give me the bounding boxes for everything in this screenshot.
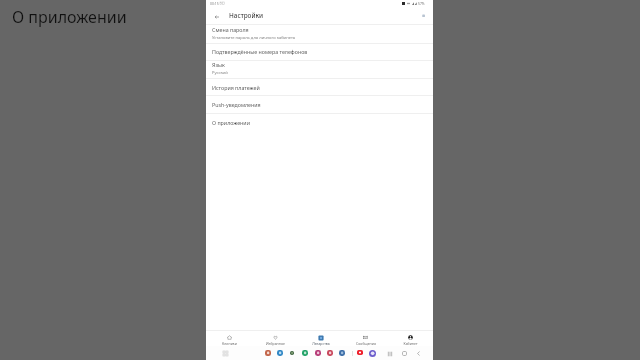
staticText: Русский bbox=[212, 70, 228, 76]
staticText: Установите пароль для личного кабинета bbox=[212, 35, 296, 41]
button[interactable]: App bbox=[369, 350, 376, 357]
staticText: История платежей bbox=[212, 84, 260, 91]
button[interactable]: Home bbox=[402, 351, 407, 356]
button[interactable]: Язык bbox=[206, 60, 433, 77]
button[interactable]: App bbox=[327, 350, 333, 356]
button[interactable]: Options bbox=[419, 11, 428, 20]
button[interactable]: Клиники bbox=[206, 330, 252, 346]
button[interactable]: App bbox=[315, 350, 321, 356]
button[interactable]: App bbox=[277, 350, 283, 356]
staticText: Push-уведомления bbox=[212, 101, 261, 108]
button[interactable]: Back bbox=[416, 351, 421, 356]
button[interactable]: App bbox=[265, 350, 271, 356]
staticText: О приложении bbox=[212, 119, 250, 126]
staticText: Смена пароля bbox=[212, 26, 249, 33]
staticText: Настройки bbox=[229, 11, 264, 20]
button[interactable]: App bbox=[302, 350, 308, 356]
button[interactable]: Лекарства bbox=[298, 330, 343, 346]
button[interactable]: Push-уведомления bbox=[206, 95, 433, 113]
button[interactable]: YouTube bbox=[357, 350, 363, 355]
staticText: 00:15 bbox=[210, 1, 219, 6]
button[interactable]: Recents bbox=[387, 351, 393, 357]
staticText: О приложении bbox=[12, 6, 127, 28]
button[interactable]: App bbox=[339, 350, 345, 356]
staticText: Подтверждённые номера телефонов bbox=[212, 48, 308, 55]
staticText: Лекарства bbox=[312, 341, 330, 346]
button[interactable]: Back bbox=[212, 12, 222, 22]
button[interactable]: История платежей bbox=[206, 78, 433, 96]
button[interactable]: Сообщения bbox=[343, 330, 388, 346]
button[interactable]: О приложении bbox=[206, 113, 433, 131]
staticText: 57% bbox=[418, 1, 425, 5]
button[interactable]: Кабинет bbox=[388, 330, 433, 346]
button[interactable]: Подтверждённые номера телефонов bbox=[206, 43, 433, 60]
staticText: Кабинет bbox=[403, 341, 418, 346]
staticText: Язык bbox=[212, 61, 225, 68]
button[interactable]: Избранное bbox=[252, 330, 298, 346]
button[interactable]: App bbox=[290, 351, 294, 355]
button[interactable]: Смена пароля bbox=[206, 24, 433, 43]
staticText: Избранное bbox=[266, 341, 285, 346]
staticText: Клиники bbox=[222, 341, 237, 346]
staticText: Сообщения bbox=[356, 341, 376, 346]
